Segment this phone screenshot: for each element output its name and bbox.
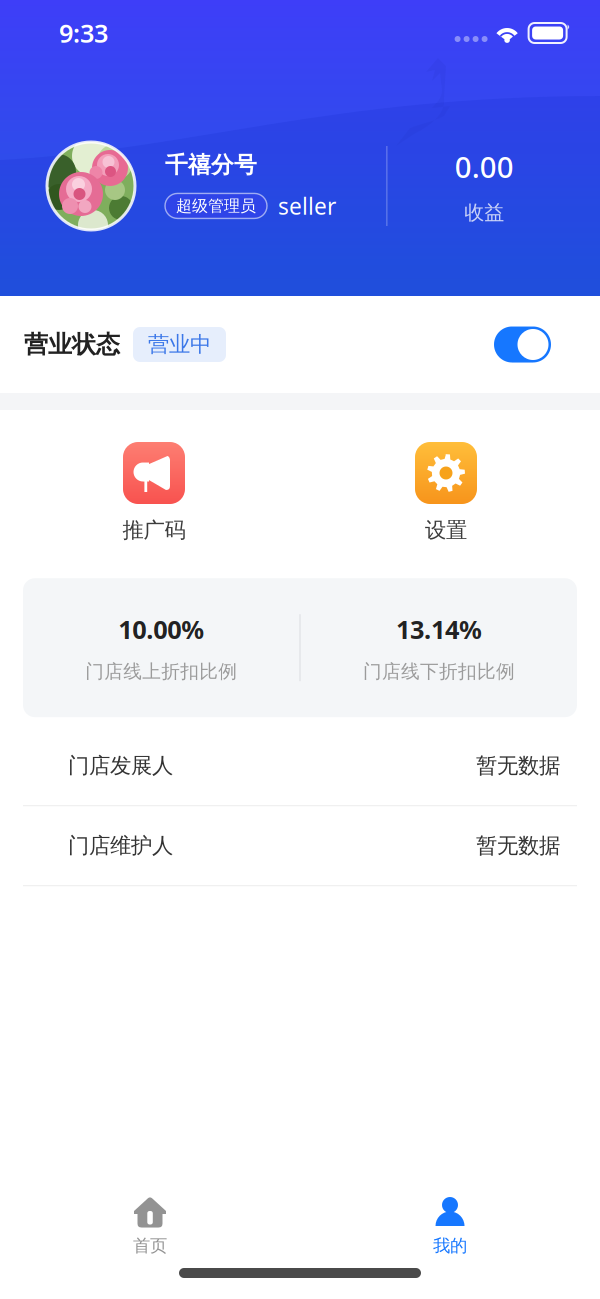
button[interactable]: 首页 — [0, 1197, 300, 1256]
staticText: 收益 — [464, 200, 504, 225]
staticText: 千禧分号 — [165, 151, 257, 179]
staticText: 10.00% — [118, 612, 204, 646]
staticText: 我的 — [433, 1235, 467, 1256]
button[interactable]: 我的 — [300, 1197, 600, 1256]
staticText: 门店发展人 — [68, 753, 173, 779]
button[interactable]: 营业状态开关 — [494, 326, 551, 362]
staticText: 暂无数据 — [476, 753, 560, 779]
button[interactable]: 门店维护人 — [0, 806, 600, 886]
staticText: 推广码 — [122, 517, 185, 543]
staticText: seller — [278, 191, 336, 221]
staticText: 营业中 — [148, 331, 211, 358]
staticText: 超级管理员 — [176, 196, 256, 216]
staticText: 9:33 — [59, 16, 108, 50]
staticText: 首页 — [133, 1235, 167, 1256]
button[interactable]: 设置 — [300, 442, 592, 543]
staticText: 0.00 — [455, 147, 514, 186]
staticText: 门店维护人 — [68, 833, 173, 859]
staticText: 13.14% — [396, 612, 482, 646]
staticText: 营业状态 — [24, 330, 120, 359]
staticText: 门店线上折扣比例 — [85, 660, 237, 683]
staticText: 设置 — [425, 517, 467, 543]
button[interactable]: 推广码 — [8, 442, 300, 543]
button[interactable]: 门店发展人 — [0, 726, 600, 806]
staticText: 暂无数据 — [476, 833, 560, 859]
staticText: 门店线下折扣比例 — [363, 660, 515, 683]
